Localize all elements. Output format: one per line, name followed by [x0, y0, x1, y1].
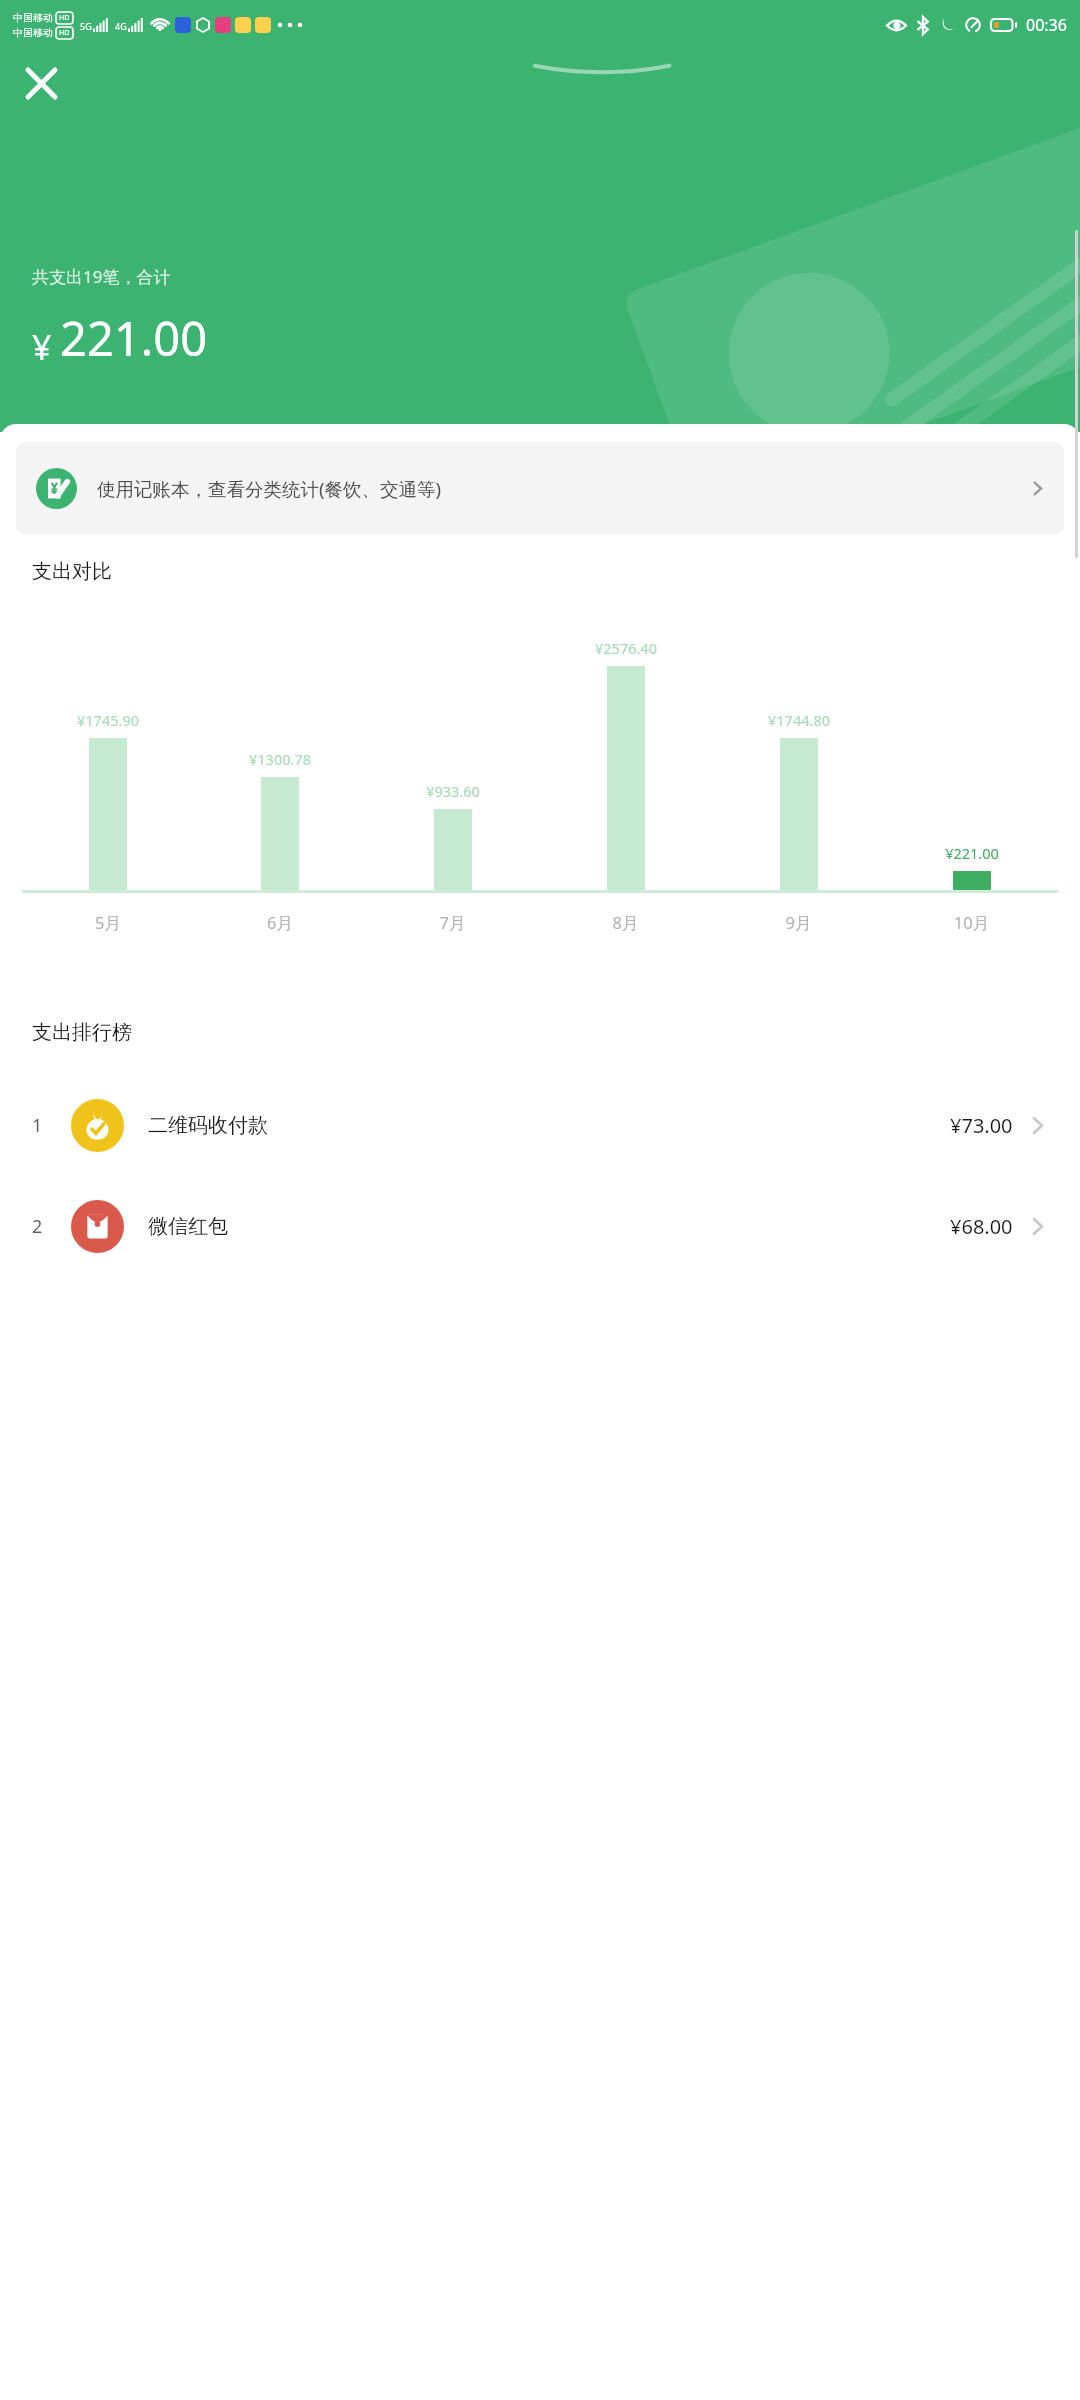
staticText: 支出排行榜 — [32, 1020, 132, 1045]
staticText: ¥ — [32, 324, 52, 370]
staticText: 支出对比 — [32, 559, 112, 584]
button[interactable]: 2 — [0, 1194, 1080, 1259]
staticText: ¥1744.80 — [768, 710, 830, 730]
staticText: 2 — [32, 1214, 43, 1239]
staticText: 9月 — [712, 911, 885, 934]
staticText: 8月 — [539, 911, 712, 934]
staticText: 二维码收付款 — [148, 1113, 268, 1138]
staticText: 7月 — [366, 911, 539, 934]
staticText: ¥73.00 — [950, 1112, 1013, 1139]
staticText: ¥1300.78 — [249, 749, 311, 769]
staticText: 10月 — [885, 911, 1058, 934]
button[interactable]: 1 — [0, 1093, 1080, 1158]
staticText: ¥2576.40 — [595, 638, 657, 658]
staticText: 4G — [115, 20, 127, 32]
staticText: 共支出19笔，合计 — [32, 265, 171, 288]
staticText: HD — [59, 13, 70, 23]
button[interactable]: Close — [12, 54, 70, 112]
button[interactable]: 使用记账本，查看分类统计(餐饮、交通等) — [16, 442, 1064, 535]
staticText: 中国移动 — [13, 11, 53, 24]
staticText: ¥933.60 — [426, 781, 480, 801]
staticText: 中国移动 — [13, 26, 53, 39]
staticText: ¥1745.90 — [77, 710, 139, 730]
staticText: 5月 — [22, 911, 194, 934]
staticText: HD — [59, 28, 70, 38]
staticText: 5G — [80, 20, 92, 32]
staticText: 6月 — [194, 911, 366, 934]
staticText: 微信红包 — [148, 1214, 228, 1239]
staticText: 00:36 — [1026, 14, 1067, 36]
staticText: 1 — [32, 1113, 43, 1138]
staticText: 221.00 — [60, 306, 208, 370]
staticText: 使用记账本，查看分类统计(餐饮、交通等) — [97, 476, 1017, 501]
staticText: ¥68.00 — [950, 1213, 1013, 1240]
staticText: ¥221.00 — [945, 843, 999, 863]
